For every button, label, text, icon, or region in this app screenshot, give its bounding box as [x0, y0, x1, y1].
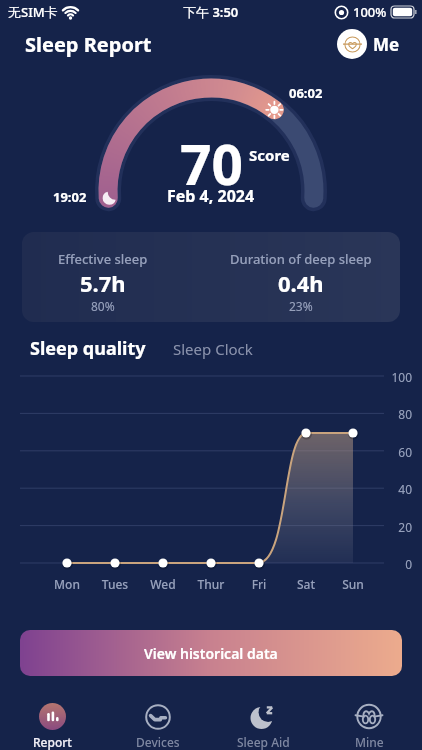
staticText: Duration of deep sleep — [230, 250, 372, 268]
button[interactable]: Sleep Aid — [210, 684, 316, 750]
staticText: 19:02 — [53, 188, 87, 206]
staticText: Mon — [47, 576, 87, 592]
button[interactable]: Sleep quality — [30, 336, 146, 361]
staticText: 60 — [386, 444, 412, 460]
button[interactable]: Me — [337, 29, 400, 59]
staticText: Sleep Aid — [237, 734, 290, 750]
staticText: 5.7h — [80, 268, 126, 298]
staticText: 无SIM卡 — [8, 3, 58, 21]
staticText: Thur — [191, 576, 231, 592]
staticText: 100 — [386, 369, 412, 385]
staticText: Tues — [95, 576, 135, 592]
staticText: 20 — [386, 519, 412, 535]
staticText: Mine — [355, 734, 384, 750]
staticText: 0.4h — [278, 268, 324, 298]
button[interactable]: Devices — [105, 684, 210, 750]
staticText: Feb 4, 2024 — [167, 185, 255, 207]
staticText: Score — [249, 145, 290, 165]
staticText: 40 — [386, 481, 412, 497]
staticText: 80 — [386, 406, 412, 422]
staticText: Sleep Report — [25, 31, 152, 58]
staticText: Devices — [136, 734, 180, 750]
button[interactable]: Report — [0, 684, 105, 750]
staticText: 70 — [180, 126, 243, 201]
staticText: 100% — [353, 3, 387, 21]
button[interactable]: Mine — [316, 684, 422, 750]
staticText: 06:02 — [289, 84, 323, 102]
staticText: Report — [33, 734, 72, 750]
staticText: 80% — [91, 298, 115, 314]
staticText: 下午 3:50 — [183, 3, 239, 21]
button[interactable]: Sleep Clock — [173, 339, 253, 359]
staticText: Sat — [286, 576, 326, 592]
staticText: View historical data — [144, 644, 278, 663]
button[interactable]: View historical data — [20, 630, 402, 676]
staticText: Me — [373, 33, 400, 56]
staticText: 23% — [289, 298, 313, 314]
staticText: Fri — [239, 576, 279, 592]
staticText: Effective sleep — [58, 250, 148, 268]
staticText: Wed — [143, 576, 183, 592]
staticText: 0 — [386, 556, 412, 572]
staticText: Sun — [333, 576, 373, 592]
